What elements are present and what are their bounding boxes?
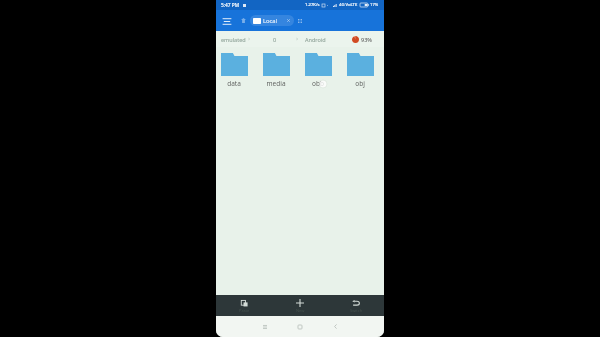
staticText: 17% [370, 2, 379, 8]
staticText: 93% [361, 36, 372, 43]
staticText: media [266, 79, 286, 88]
staticText: Android [305, 36, 326, 43]
staticText: 4G VoLTE [339, 2, 358, 8]
button[interactable]: media [255, 53, 297, 88]
button[interactable]: 0 [272, 36, 278, 43]
staticText: Local [263, 17, 278, 25]
staticText: New [296, 308, 305, 313]
button[interactable]: Home [292, 316, 308, 337]
staticText: 1.27K/s [305, 2, 320, 8]
button[interactable]: Recents [257, 316, 273, 337]
staticText: Paste [239, 308, 250, 313]
button[interactable]: Android [304, 36, 327, 43]
staticText: 0 [273, 36, 277, 43]
staticText: obj [355, 79, 365, 88]
button[interactable]: obb [297, 53, 339, 88]
button[interactable]: Back [327, 316, 343, 337]
button[interactable]: data [216, 53, 255, 88]
button[interactable]: Menu [220, 14, 234, 28]
button[interactable]: View options [295, 16, 304, 25]
button[interactable]: Home folder [239, 16, 248, 25]
staticText: obb [312, 79, 324, 88]
staticText: Switch [350, 308, 363, 313]
staticText: emulated [221, 36, 246, 43]
button[interactable]: Paste [216, 295, 272, 316]
button[interactable]: Local [250, 15, 294, 26]
button[interactable]: 93% [350, 36, 374, 43]
button[interactable]: emulated [220, 36, 247, 43]
staticText: data [227, 79, 241, 88]
button[interactable]: New [272, 295, 328, 316]
button[interactable]: Switch [328, 295, 384, 316]
button[interactable]: obj [339, 53, 381, 88]
staticText: 5:47 PM [221, 2, 240, 9]
